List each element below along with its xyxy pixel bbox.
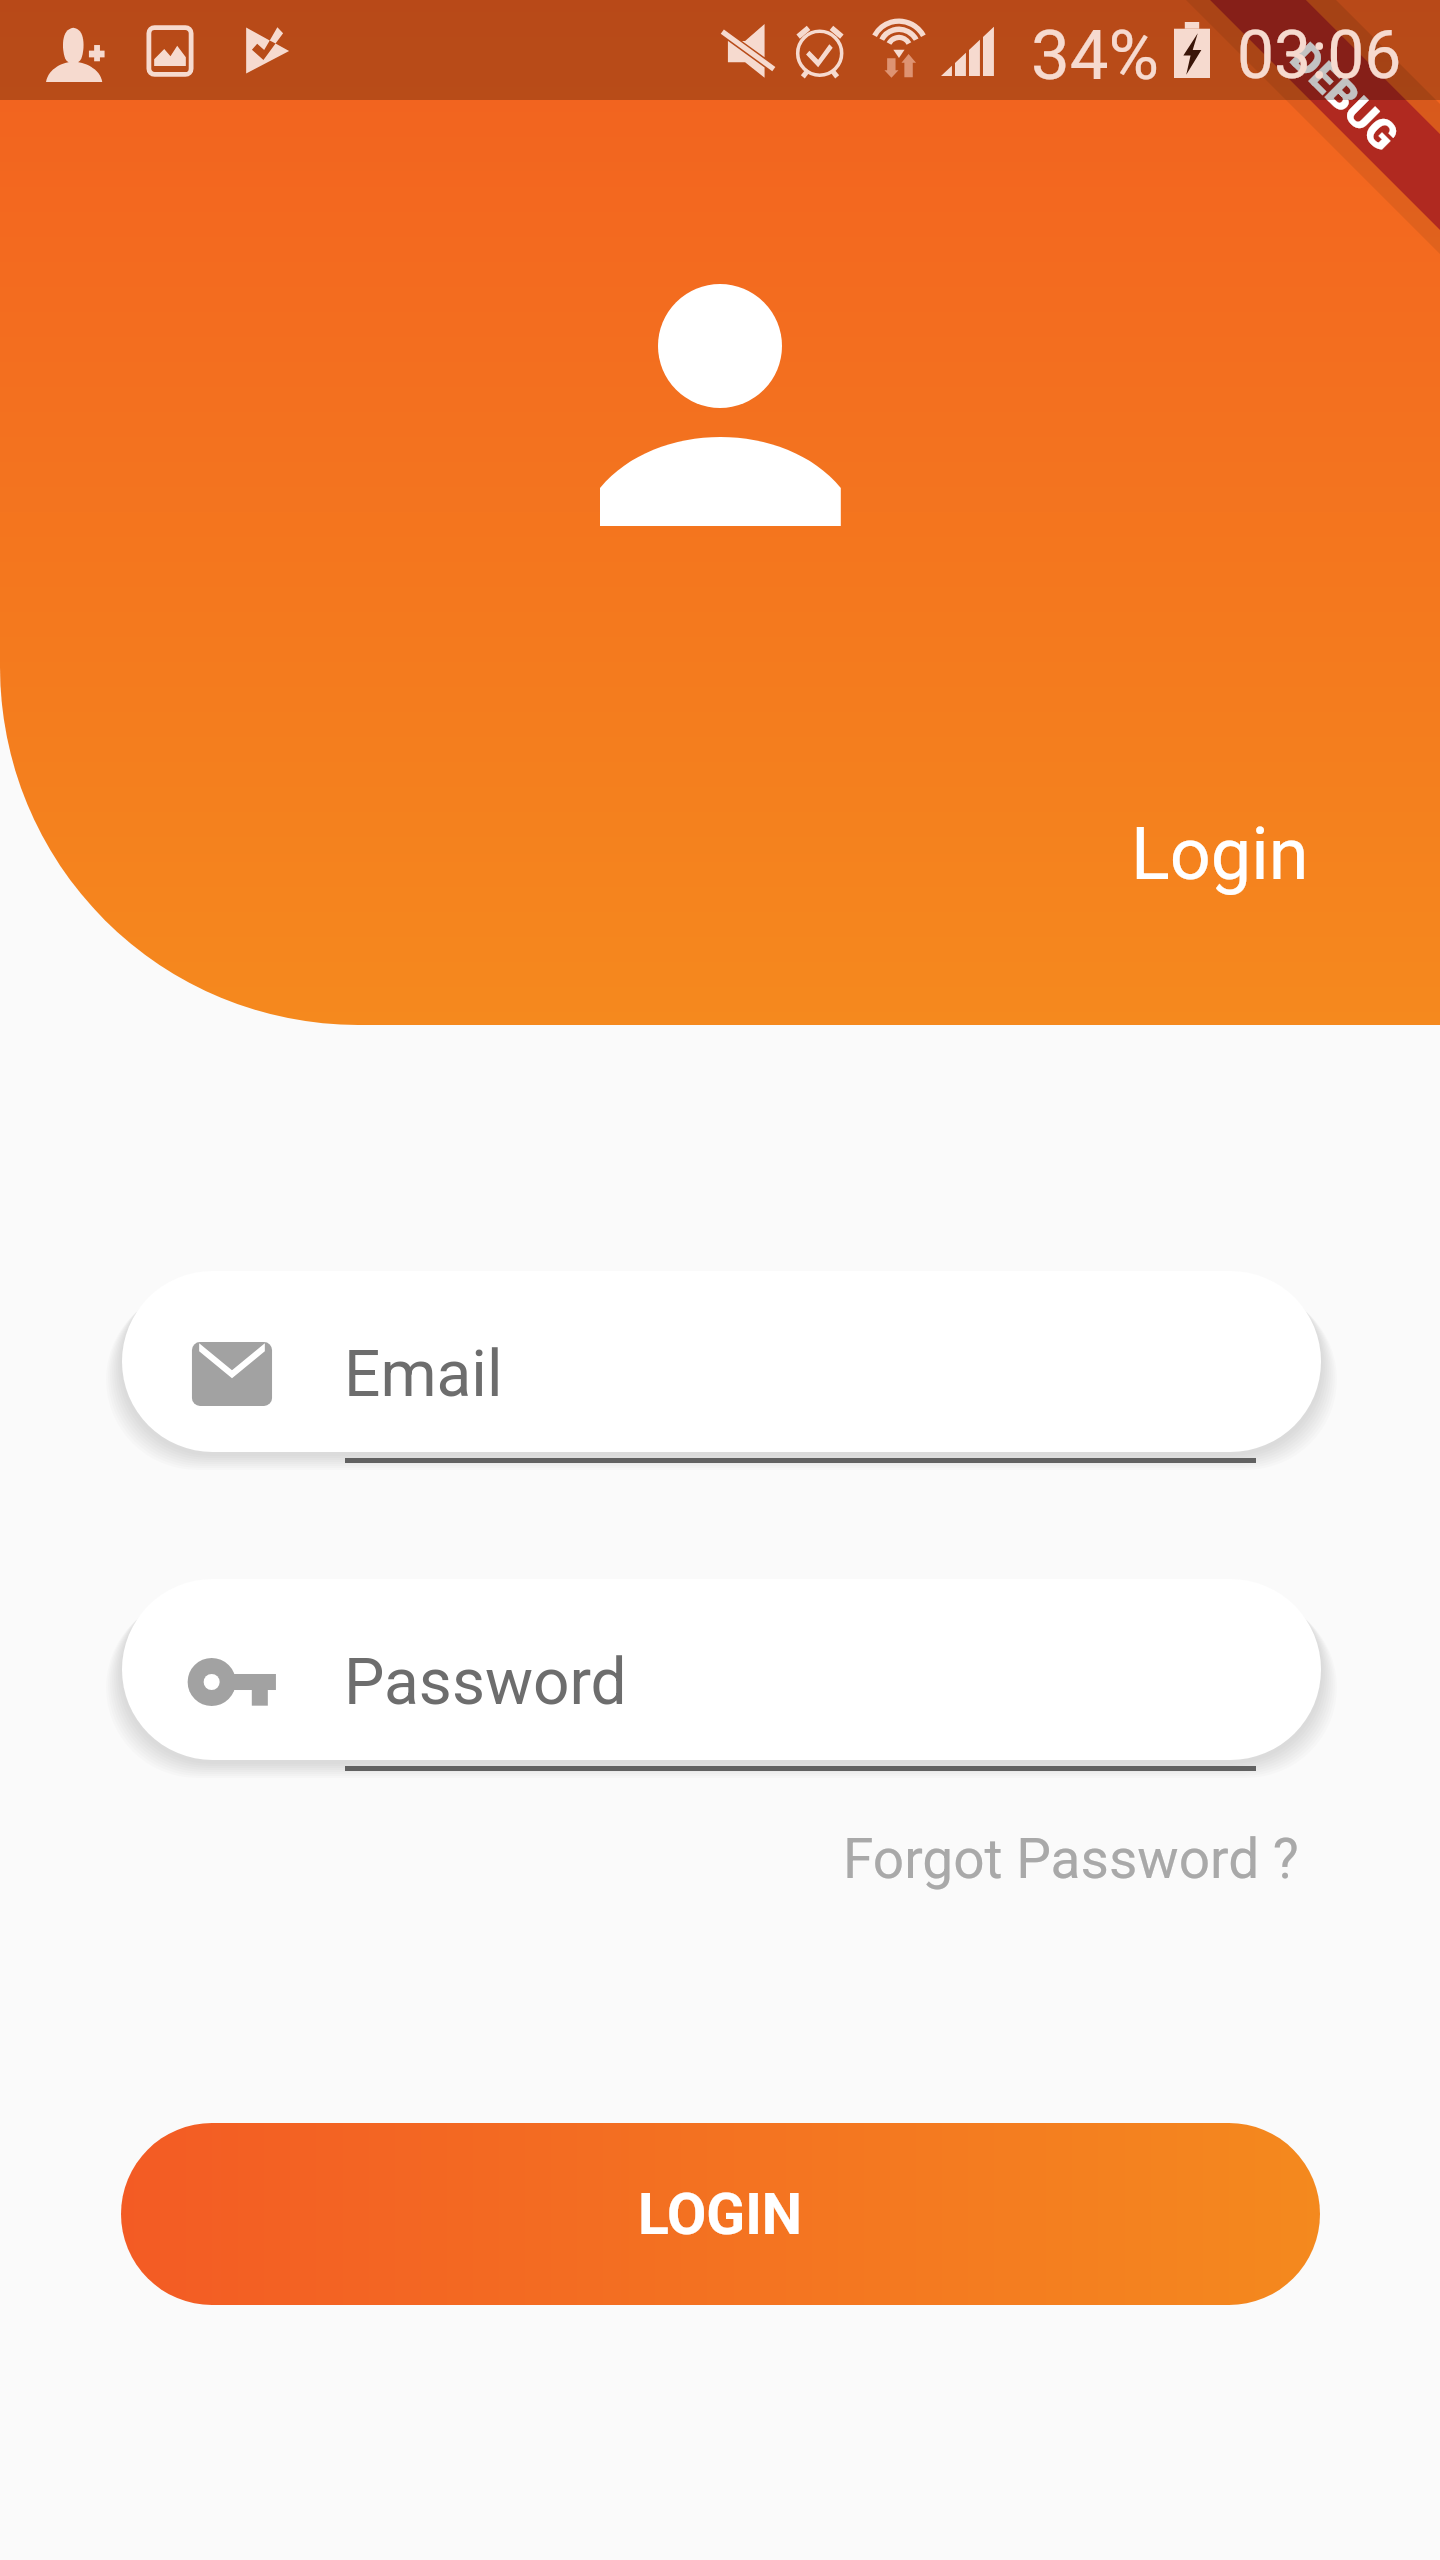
other: Contact added [46, 26, 104, 82]
button[interactable]: LOGIN [121, 2123, 1320, 2305]
staticText: LOGIN [638, 2181, 803, 2248]
button[interactable]: Email [122, 1271, 1321, 1452]
other: Signal strength [941, 24, 997, 76]
other: Alarm set [794, 22, 846, 78]
staticText: Email [344, 1337, 503, 1412]
staticText: Forgot Password ? [843, 1827, 1299, 1891]
other: Battery charging 34 percent [1174, 22, 1210, 78]
other: Screenshot captured [146, 25, 194, 77]
button[interactable]: Password [122, 1579, 1321, 1760]
other: App installed [244, 25, 292, 75]
staticText: DEBUG [1284, 34, 1408, 158]
button[interactable]: Forgot Password ? [832, 1814, 1310, 1904]
staticText: 34% [1031, 15, 1160, 96]
staticText: Password [344, 1645, 627, 1720]
other: Wi-Fi [868, 18, 926, 78]
other: Silent mode [721, 23, 775, 79]
staticText: Login [1131, 812, 1309, 896]
staticText: 03:06 [1237, 17, 1402, 94]
